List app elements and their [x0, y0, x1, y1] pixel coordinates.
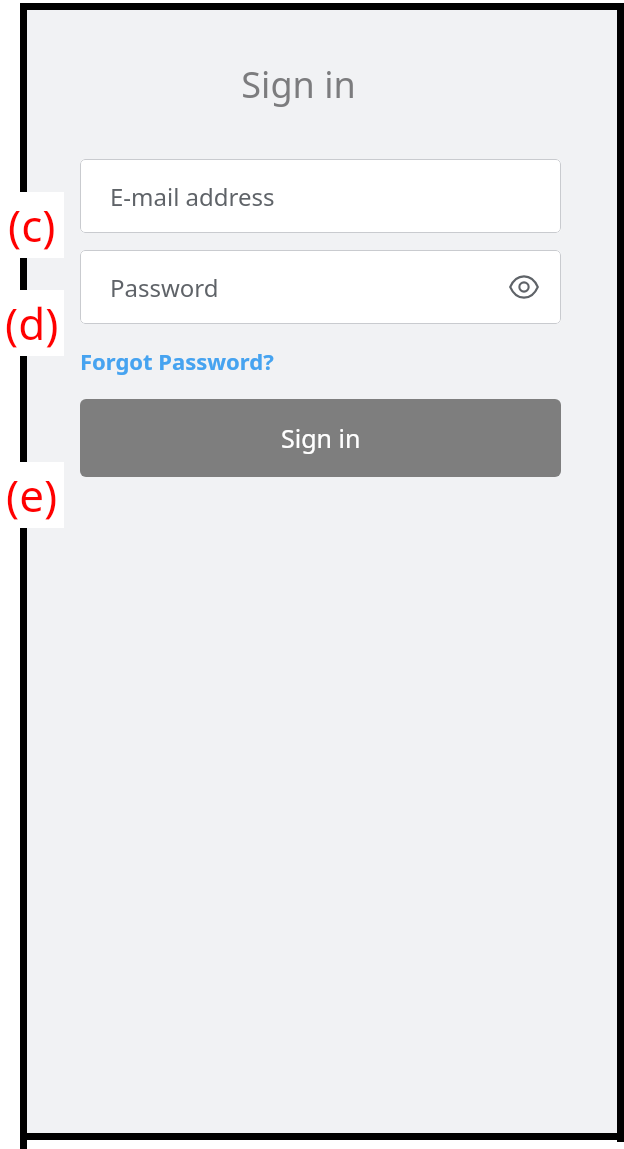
staticText: (e) [6, 465, 58, 525]
button[interactable]: E-mail address [80, 159, 561, 233]
button[interactable]: Forgot Password? [80, 344, 274, 378]
button[interactable]: Password [80, 250, 561, 324]
staticText: E-mail address [110, 180, 275, 213]
staticText: Forgot Password? [80, 346, 274, 376]
staticText: Sign in [0, 60, 597, 109]
button[interactable]: Show password [502, 265, 546, 309]
staticText: (d) [5, 293, 59, 353]
staticText: Sign in [281, 421, 361, 455]
button[interactable]: Sign in [80, 399, 561, 477]
staticText: Password [110, 271, 502, 304]
staticText: (c) [8, 195, 56, 255]
